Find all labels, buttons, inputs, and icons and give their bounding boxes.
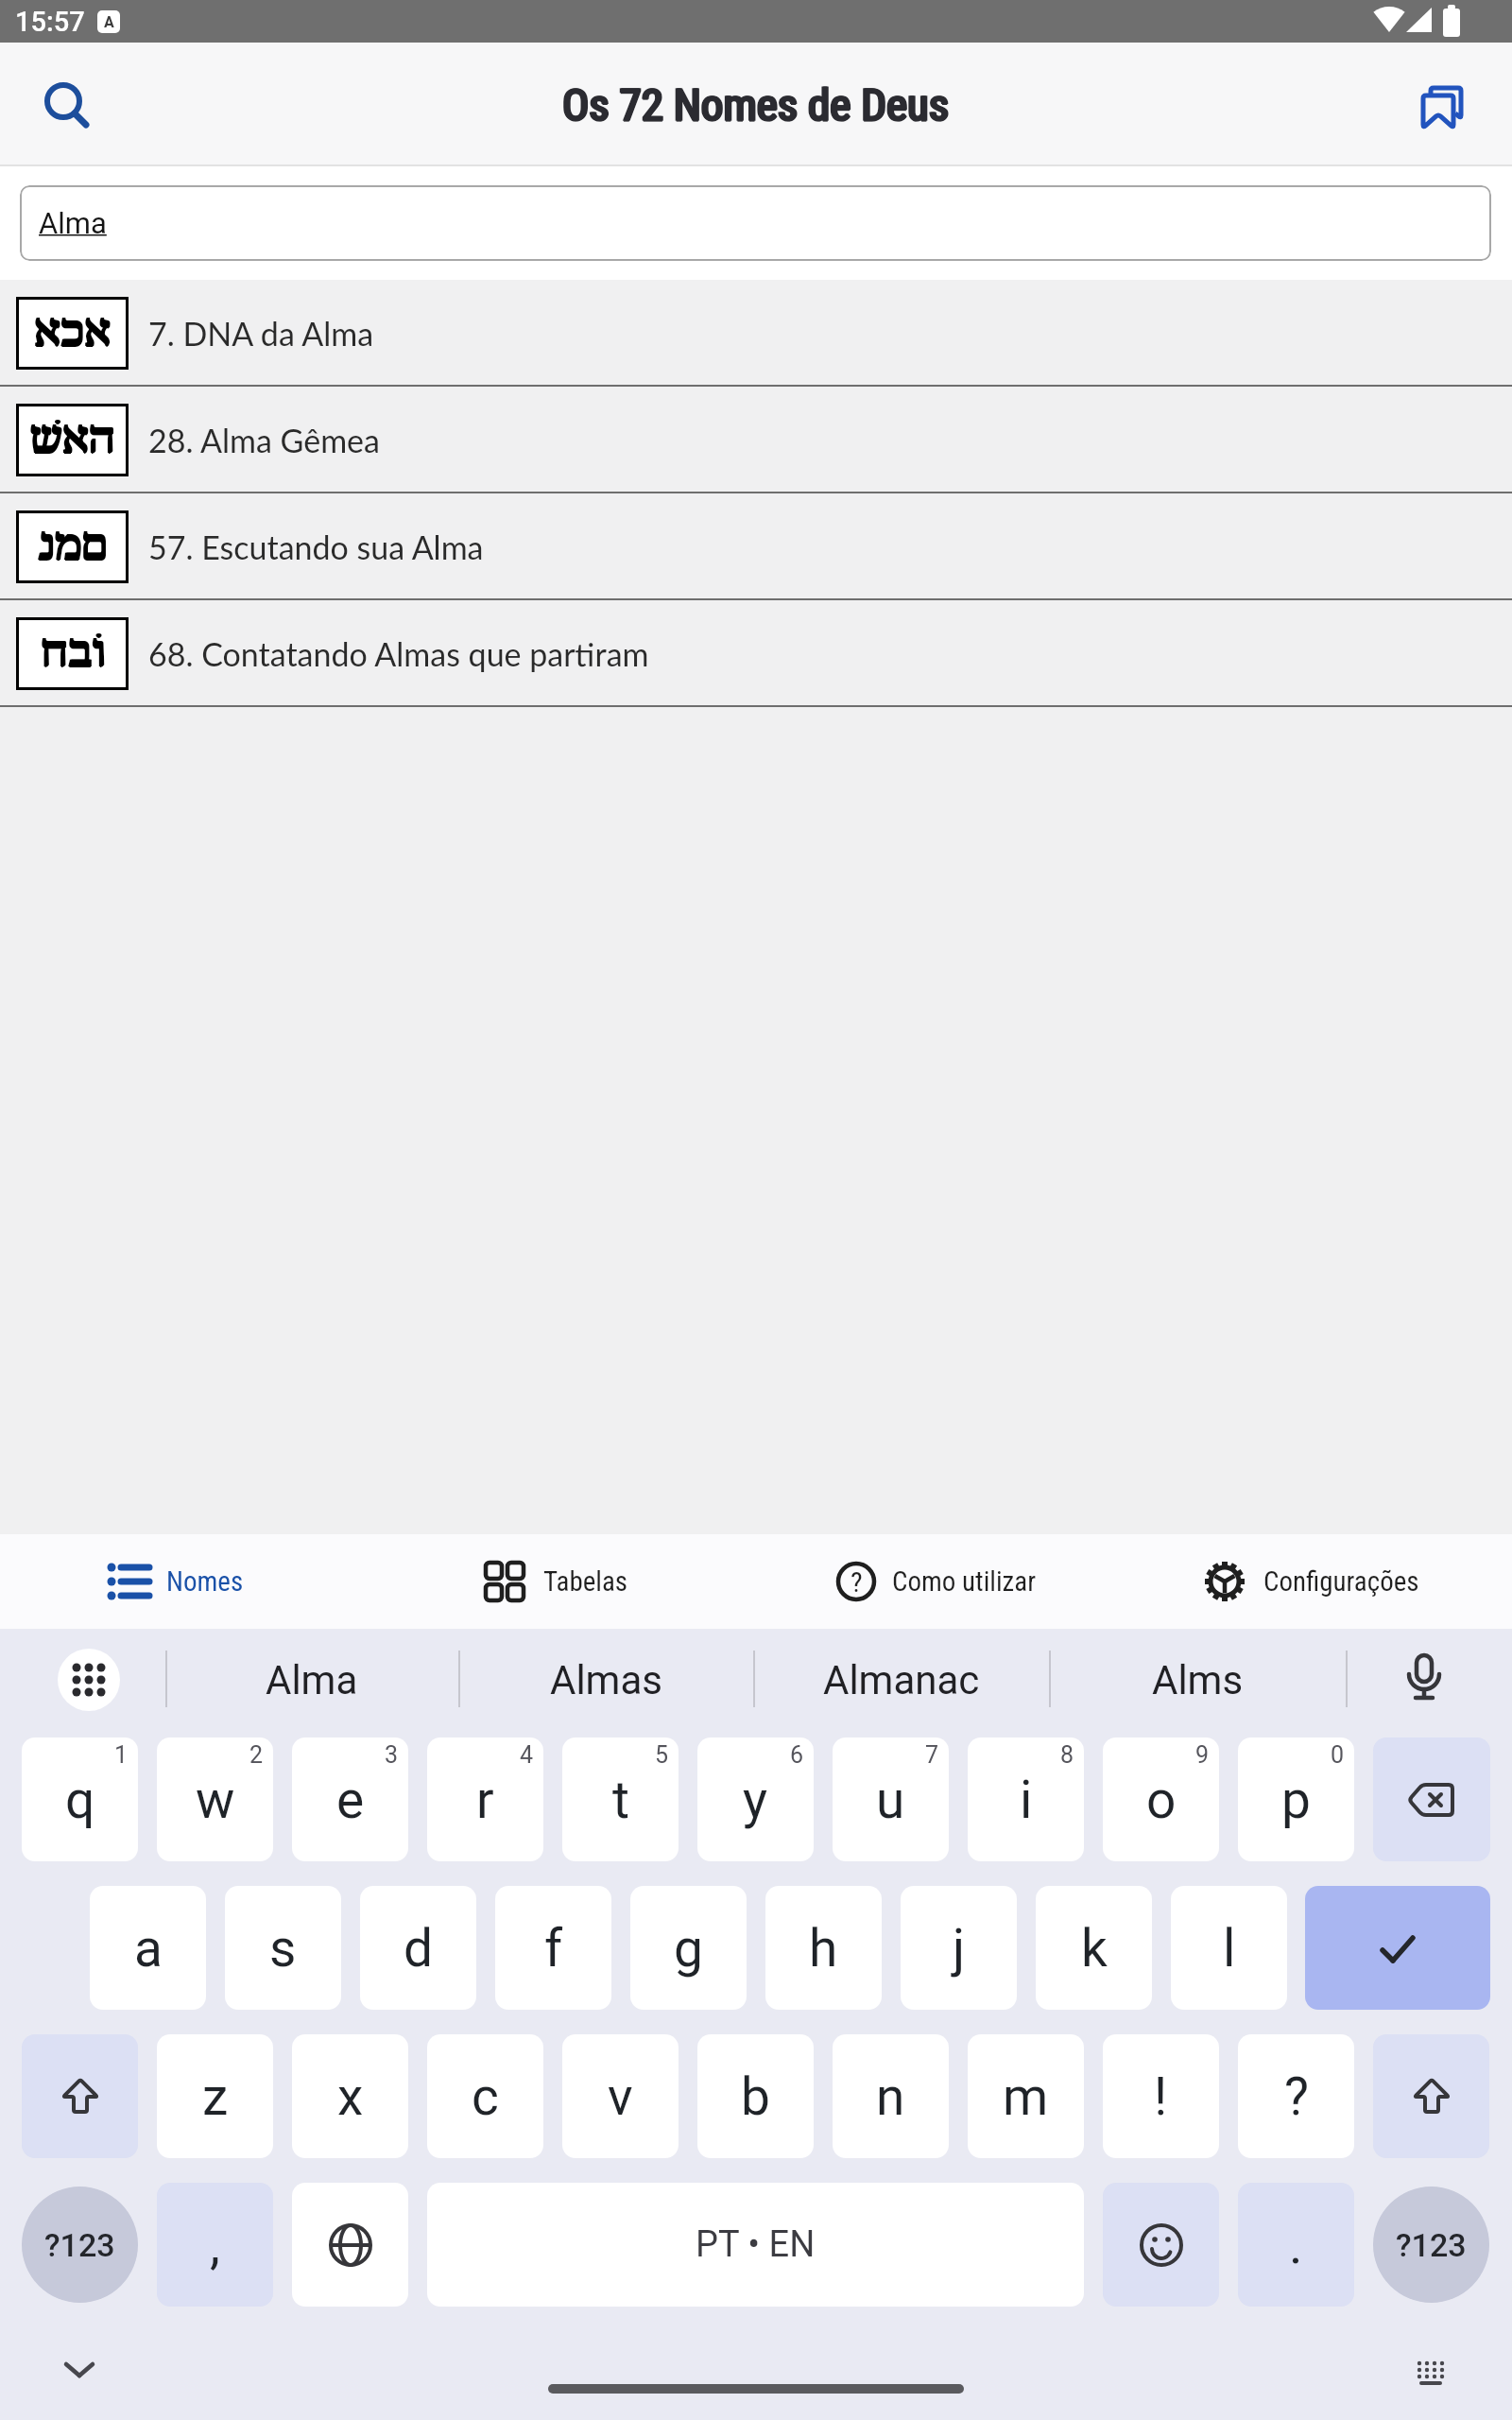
button[interactable] [1417, 78, 1470, 131]
button[interactable] [292, 2183, 408, 2307]
button[interactable]: וֹבח [0, 600, 1512, 707]
staticText: ! [1154, 2066, 1168, 2127]
staticText: . [1289, 2215, 1303, 2275]
button[interactable]: u [833, 1737, 949, 1861]
staticText: אכא [33, 307, 110, 359]
button[interactable]: x [292, 2034, 408, 2158]
staticText: ? [850, 1565, 863, 1599]
button[interactable]: j [901, 1886, 1017, 2010]
button[interactable]: Alma [165, 1638, 458, 1721]
button[interactable]: Almas [458, 1638, 753, 1721]
button[interactable] [1373, 2034, 1489, 2158]
staticText: e [336, 1770, 365, 1830]
button[interactable]: . [1238, 2183, 1354, 2307]
staticText: 1 [114, 1741, 129, 1769]
staticText: d [404, 1918, 434, 1979]
staticText: Almanac [823, 1657, 980, 1703]
button[interactable]: l [1171, 1886, 1287, 2010]
button[interactable]: n [833, 2034, 949, 2158]
staticText: 3 [385, 1741, 399, 1769]
button[interactable]: Almanac [753, 1638, 1049, 1721]
button[interactable]: r [427, 1737, 543, 1861]
button[interactable]: y [697, 1737, 814, 1861]
staticText: האשׁ [29, 414, 115, 466]
staticText: 9 [1195, 1741, 1210, 1769]
staticText: r [476, 1770, 494, 1830]
button[interactable]: ? [1238, 2034, 1354, 2158]
button[interactable]: PT • EN [427, 2183, 1084, 2307]
button[interactable]: ?123 [22, 2187, 138, 2303]
staticText: j [953, 1918, 966, 1979]
button[interactable]: f [495, 1886, 611, 2010]
button[interactable]: t [562, 1737, 679, 1861]
button[interactable] [1373, 1737, 1490, 1861]
staticText: Alms [1152, 1657, 1244, 1703]
staticText: q [65, 1770, 95, 1830]
button[interactable] [62, 2357, 96, 2381]
staticText: Os 72 Nomes de Deus [562, 78, 950, 130]
button[interactable]: z [157, 2034, 273, 2158]
staticText: 8 [1060, 1741, 1074, 1769]
button[interactable]: האשׁ [0, 387, 1512, 493]
staticText: x [337, 2066, 364, 2127]
button[interactable]: d [360, 1886, 476, 2010]
staticText: Configurações [1263, 1565, 1419, 1598]
button[interactable]: g [630, 1886, 747, 2010]
staticText: אכא [34, 307, 111, 359]
button[interactable] [1305, 1886, 1490, 2010]
button[interactable] [1103, 2183, 1219, 2307]
button[interactable]: Tabelas [485, 1562, 628, 1601]
button[interactable]: q [22, 1737, 138, 1861]
staticText: 57. Escutando sua Alma [148, 527, 484, 566]
button[interactable]: Alma [20, 185, 1491, 261]
button[interactable] [22, 2034, 138, 2158]
staticText: Os 72 Nomes de Deus [561, 78, 949, 130]
staticText: p [1281, 1770, 1311, 1830]
staticText: m [1003, 2066, 1049, 2127]
button[interactable]: w [157, 1737, 273, 1861]
button[interactable]: םמנ [0, 493, 1512, 600]
button[interactable]: b [697, 2034, 814, 2158]
staticText: 7. DNA da Alma [148, 314, 374, 353]
button[interactable]: אכא [0, 280, 1512, 387]
button[interactable]: Configurações [1203, 1560, 1419, 1603]
button[interactable]: , [157, 2183, 273, 2307]
staticText: םמנ [38, 522, 108, 574]
staticText: 7 [925, 1741, 939, 1769]
button[interactable]: o [1103, 1737, 1219, 1861]
button[interactable]: m [968, 2034, 1084, 2158]
staticText: z [202, 2066, 229, 2127]
staticText: Almas [550, 1657, 662, 1703]
staticText: g [674, 1918, 703, 1979]
staticText: c [472, 2066, 499, 2127]
staticText: 5 [655, 1741, 669, 1769]
button[interactable]: v [562, 2034, 679, 2158]
button[interactable]: e [292, 1737, 408, 1861]
staticText: אכא [35, 307, 112, 359]
button[interactable]: k [1036, 1886, 1152, 2010]
staticText: Alma [266, 1657, 358, 1703]
button[interactable]: ?123 [1373, 2187, 1489, 2303]
button[interactable]: c [427, 2034, 543, 2158]
staticText: 0 [1331, 1741, 1345, 1769]
button[interactable]: s [225, 1886, 341, 2010]
button[interactable] [1412, 2359, 1450, 2387]
button[interactable]: ? [835, 1561, 1037, 1602]
button[interactable]: Nomes [107, 1560, 244, 1603]
staticText: אכא [34, 308, 111, 360]
staticText: 28. Alma Gêmea [148, 421, 380, 459]
button[interactable]: a [90, 1886, 206, 2010]
staticText: 4 [520, 1741, 534, 1769]
button[interactable] [1399, 1653, 1448, 1703]
staticText: ? [1284, 2066, 1309, 2127]
button[interactable]: p [1238, 1737, 1354, 1861]
button[interactable]: i [968, 1737, 1084, 1861]
button[interactable]: Alms [1049, 1638, 1346, 1721]
staticText: 15:57 [15, 6, 85, 38]
staticText: םמנ [37, 521, 107, 573]
button[interactable]: ! [1103, 2034, 1219, 2158]
button[interactable]: h [765, 1886, 882, 2010]
button[interactable] [58, 1649, 120, 1711]
button[interactable] [42, 80, 91, 130]
staticText: Como utilizar [892, 1565, 1037, 1598]
